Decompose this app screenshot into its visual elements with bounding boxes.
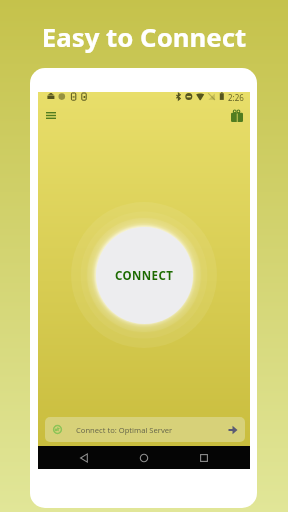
button[interactable]: Back <box>74 448 94 468</box>
button[interactable]: Connect to: Optimal Server <box>45 417 245 442</box>
button[interactable]: Home <box>134 448 154 468</box>
staticText: CONNECT <box>115 268 174 284</box>
other: System navigation bar <box>38 446 250 469</box>
button[interactable]: Open navigation menu <box>41 105 61 125</box>
button[interactable]: Recent apps <box>194 448 214 468</box>
staticText: Connect to: Optimal Server <box>76 425 173 435</box>
button[interactable]: CONNECT <box>96 227 193 324</box>
staticText: Easy to Connect <box>0 19 288 54</box>
staticText: 2:26 <box>228 92 244 103</box>
button[interactable]: Gifts <box>227 106 247 126</box>
